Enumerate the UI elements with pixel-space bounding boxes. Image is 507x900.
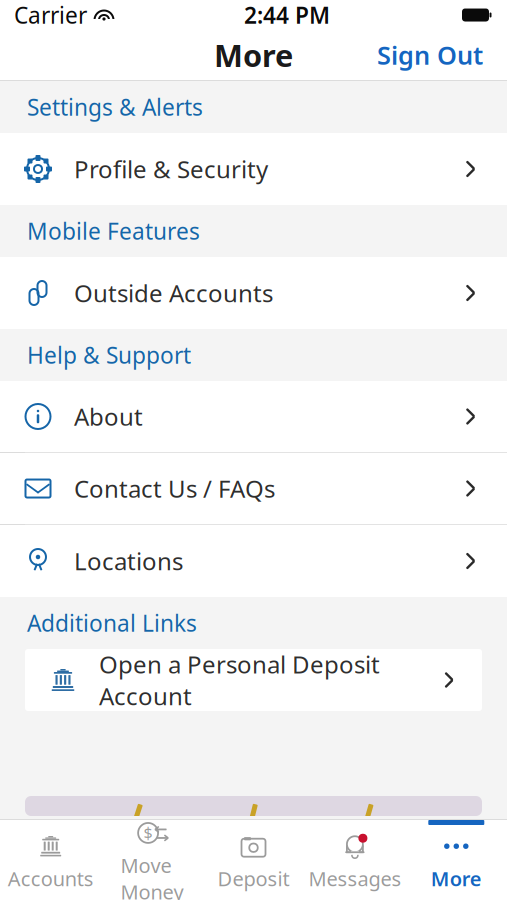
button[interactable]: Contact Us / FAQs xyxy=(0,453,507,525)
button[interactable]: More xyxy=(406,820,507,900)
staticText: Messages xyxy=(308,865,401,892)
button[interactable]: Open a Personal Deposit Account xyxy=(25,649,482,711)
staticText: More xyxy=(214,35,293,75)
staticText: Sign Out xyxy=(377,38,483,72)
button[interactable]: $ xyxy=(101,820,203,900)
button[interactable]: Messages xyxy=(304,820,406,900)
staticText: Settings & Alerts xyxy=(27,92,203,122)
button[interactable]: Sign Out xyxy=(367,30,493,80)
staticText: Outside Accounts xyxy=(74,277,273,309)
button[interactable]: Deposit xyxy=(203,820,304,900)
button[interactable]: Profile & Security xyxy=(0,133,507,205)
staticText: Accounts xyxy=(8,865,94,892)
staticText: 2:44 PM xyxy=(244,0,330,30)
staticText: Contact Us / FAQs xyxy=(74,473,275,504)
staticText: Help & Support xyxy=(27,340,191,370)
staticText: More xyxy=(431,865,482,892)
button[interactable]: About xyxy=(0,381,507,453)
button[interactable]: Accounts xyxy=(0,820,101,900)
button[interactable]: Locations xyxy=(0,525,507,597)
staticText: Carrier xyxy=(14,0,87,30)
staticText: Deposit xyxy=(217,865,289,892)
staticText: About xyxy=(74,401,143,432)
staticText: Mobile Features xyxy=(27,216,200,246)
staticText: Move Money xyxy=(121,852,184,900)
button[interactable]: Outside Accounts xyxy=(0,257,507,329)
staticText: Profile & Security xyxy=(74,153,268,185)
staticText: Additional Links xyxy=(27,608,197,638)
staticText: Locations xyxy=(74,545,183,577)
staticText: $ xyxy=(144,822,153,843)
staticText: Open a Personal Deposit Account xyxy=(99,648,380,712)
